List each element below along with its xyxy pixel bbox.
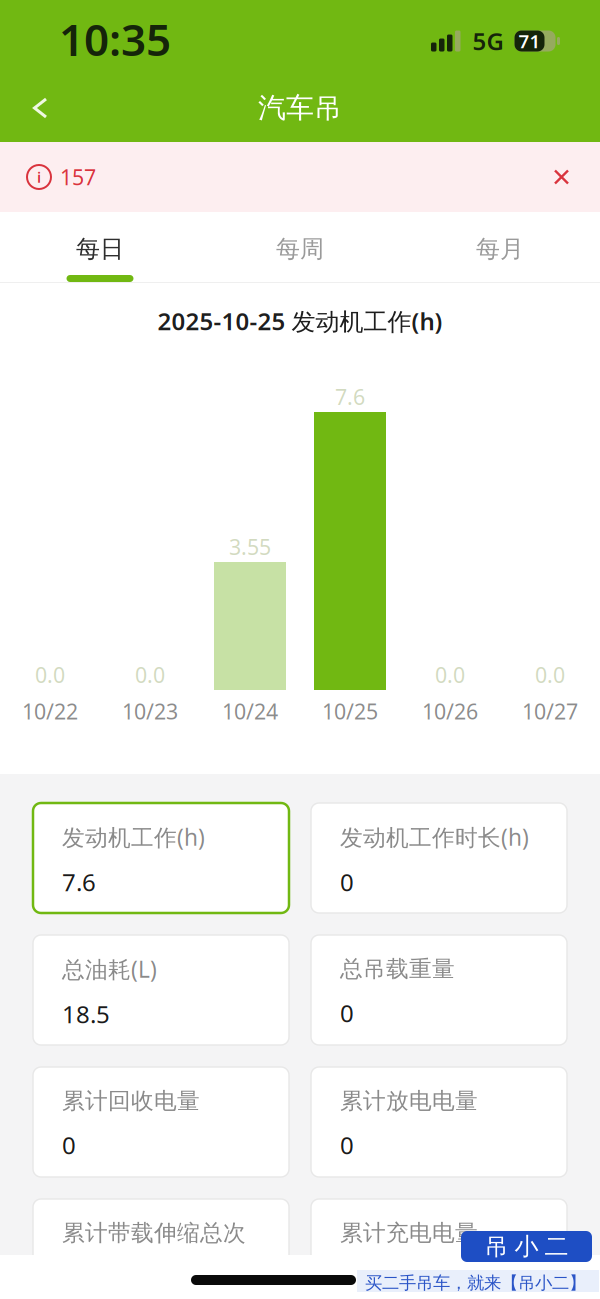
staticText: 71	[518, 29, 540, 53]
staticText: 0.0	[135, 661, 165, 689]
staticText: 10/23	[122, 697, 178, 725]
staticText: 发动机工作时长(h)	[340, 822, 529, 852]
staticText: 0	[340, 866, 354, 898]
staticText: 10/26	[422, 697, 478, 725]
button[interactable]: 发动机工作时长(h)	[311, 803, 567, 913]
staticText: 每日	[76, 234, 124, 264]
button[interactable]: 累计带载伸缩总次	[33, 1199, 289, 1299]
staticText: 18.5	[62, 998, 110, 1030]
staticText: 累计放电电量	[340, 1087, 478, 1115]
button[interactable]: i	[27, 163, 96, 191]
button[interactable]: 发动机工作(h)	[33, 803, 289, 913]
staticText: 每周	[276, 234, 324, 264]
staticText: 累计充电电量	[340, 1219, 478, 1247]
button[interactable]: 累计放电电量	[311, 1067, 567, 1177]
staticText: 7.6	[335, 383, 365, 411]
staticText: 7.6	[62, 866, 96, 898]
button[interactable]	[544, 159, 579, 194]
staticText: 总吊载重量	[340, 955, 455, 983]
staticText: 0	[62, 1129, 76, 1161]
staticText: 0	[340, 1129, 354, 1161]
staticText: 发动机工作(h)	[62, 822, 205, 852]
staticText: 10/24	[222, 697, 278, 725]
staticText: 157	[60, 163, 96, 191]
staticText: 总油耗(L)	[62, 954, 157, 984]
button[interactable]: 总吊载重量	[311, 935, 567, 1045]
staticText: 10:35	[59, 10, 171, 68]
staticText: 每月	[476, 234, 524, 264]
staticText: 吊小二	[484, 1232, 568, 1261]
button[interactable]: 累计充电电量	[311, 1199, 567, 1299]
staticText: 0.0	[535, 661, 565, 689]
staticText: 0	[340, 1261, 354, 1293]
staticText: 10/22	[22, 697, 78, 725]
staticText: 买二手吊车，就来【吊小二】	[365, 1272, 586, 1294]
button[interactable]	[0, 85, 68, 138]
staticText: 0	[340, 997, 354, 1029]
staticText: 5G	[472, 25, 503, 57]
staticText: 累计回收电量	[62, 1087, 200, 1115]
button[interactable]: 每月	[400, 214, 600, 284]
staticText: i	[37, 167, 41, 187]
staticText: 3.55	[229, 533, 271, 561]
staticText: 10/27	[522, 697, 578, 725]
button[interactable]: 每周	[200, 214, 400, 284]
staticText: 0.0	[35, 661, 65, 689]
staticText: 0.0	[435, 661, 465, 689]
staticText: 汽车吊	[258, 91, 342, 125]
staticText: 2025-10-25 发动机工作(h)	[157, 305, 442, 337]
staticText: 10/25	[322, 697, 378, 725]
button[interactable]: 每日	[0, 214, 200, 284]
button[interactable]: 总油耗(L)	[33, 935, 289, 1045]
staticText: 累计带载伸缩总次	[62, 1219, 246, 1247]
button[interactable]: 累计回收电量	[33, 1067, 289, 1177]
